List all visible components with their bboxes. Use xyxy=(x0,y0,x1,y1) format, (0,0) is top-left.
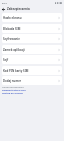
staticText: Zamek aplikacji xyxy=(3,48,25,52)
staticText: dostęp do funkcji xyxy=(2,91,23,94)
staticText: Dodaj numer xyxy=(3,79,22,83)
button[interactable]: dostęp do funkcji xyxy=(2,91,23,94)
staticText: Szyfrowanie xyxy=(3,37,20,41)
staticText: Zabezpieczenia xyxy=(7,7,30,11)
staticText: Blokada SIM xyxy=(3,27,21,31)
button[interactable]: Zamek aplikacji xyxy=(2,45,62,54)
button[interactable]: Back xyxy=(0,5,7,13)
button[interactable]: Kod PIN karty SIM xyxy=(2,66,62,75)
button[interactable]: Blokada SIM xyxy=(2,24,62,33)
staticText: Hasło ekranu xyxy=(3,16,22,20)
button[interactable]: administratora oraz xyxy=(2,88,26,91)
button[interactable]: Szyfrowanie xyxy=(2,34,62,43)
button[interactable]: Hasło ekranu xyxy=(2,13,62,22)
staticText: Nadaj uprawnienia xyxy=(2,85,24,88)
staticText: 9:41 xyxy=(2,1,7,4)
button[interactable]: Sejf xyxy=(2,55,62,64)
staticText: Sejf xyxy=(3,58,9,62)
staticText: administratora oraz xyxy=(2,88,26,91)
staticText: Kod PIN karty SIM xyxy=(3,69,29,73)
button[interactable]: Dodaj numer xyxy=(2,76,62,85)
